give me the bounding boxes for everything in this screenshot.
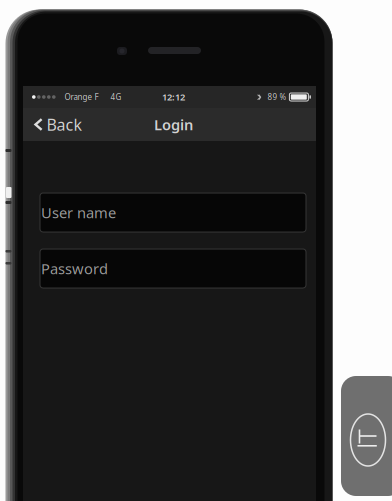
- staticText: 4G: [111, 92, 122, 102]
- staticText: %: [279, 92, 286, 102]
- staticText: Login: [154, 115, 193, 134]
- staticText: Orange F: [65, 92, 99, 102]
- staticText: 89: [267, 92, 277, 102]
- staticText: 12:12: [162, 91, 185, 103]
- button[interactable]: Back: [23, 107, 90, 142]
- button[interactable]: User name: [40, 193, 306, 232]
- staticText: Password: [41, 259, 108, 278]
- staticText: Back: [46, 114, 82, 135]
- button[interactable]: Password: [40, 249, 306, 288]
- staticText: User name: [41, 203, 116, 222]
